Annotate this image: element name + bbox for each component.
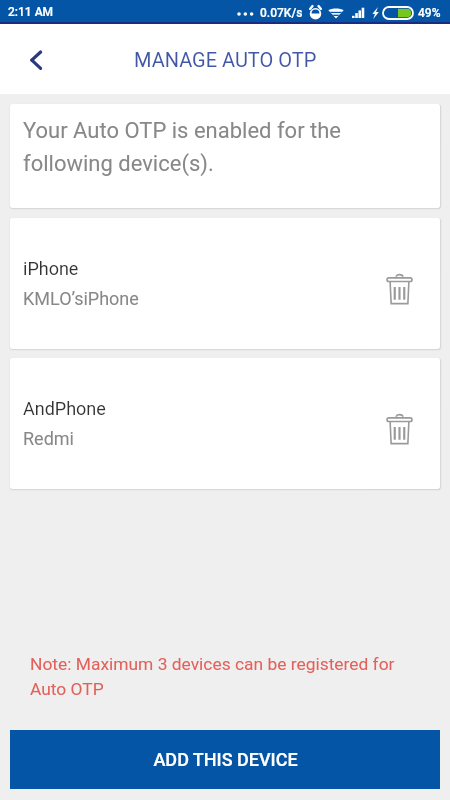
- staticText: AndPhone: [23, 398, 106, 419]
- staticText: Note: Maximum 3 devices can be registere…: [30, 654, 410, 699]
- staticText: Redmi: [23, 428, 74, 449]
- staticText: 0.07K/s: [260, 6, 303, 20]
- button[interactable]: iPhone: [10, 218, 440, 349]
- staticText: ADD THIS DEVICE: [153, 749, 298, 770]
- staticText: KMLO’siPhone: [23, 288, 139, 309]
- button[interactable]: Back: [15, 38, 59, 82]
- button[interactable]: ADD THIS DEVICE: [10, 730, 440, 789]
- staticText: 2:11 AM: [8, 5, 54, 19]
- staticText: 49%: [418, 6, 441, 20]
- button[interactable]: Delete device: [375, 265, 423, 313]
- button[interactable]: AndPhone: [10, 358, 440, 489]
- button[interactable]: Delete device: [375, 405, 423, 453]
- staticText: Your Auto OTP is enabled for the followi…: [23, 118, 378, 176]
- staticText: iPhone: [23, 258, 79, 279]
- staticText: MANAGE AUTO OTP: [134, 48, 317, 71]
